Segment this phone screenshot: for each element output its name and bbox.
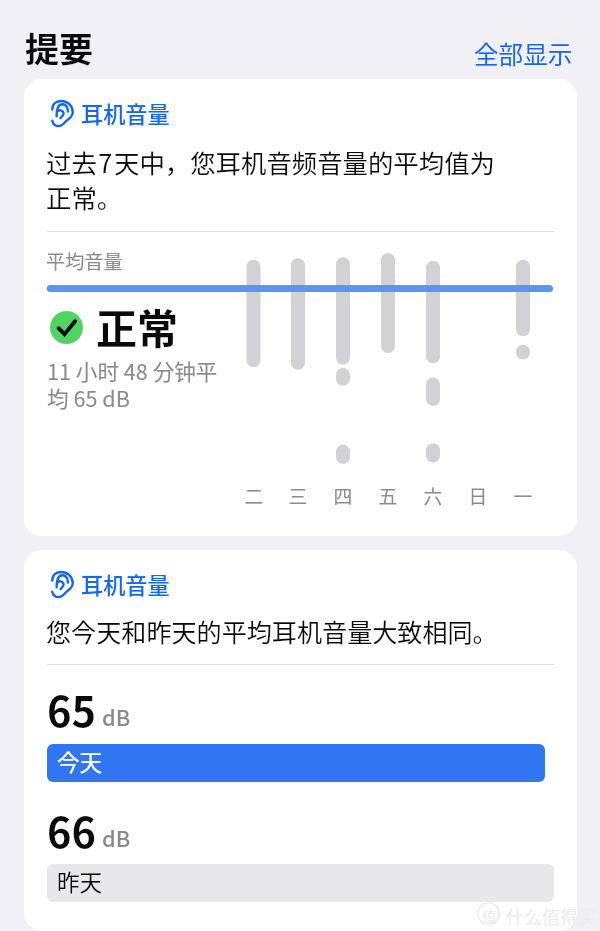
staticText: 四 — [328, 482, 358, 509]
button[interactable]: 耳机音量 — [49, 566, 172, 602]
staticText: dB — [102, 822, 131, 854]
button[interactable]: 今天 — [47, 744, 545, 782]
staticText: 11 小时 48 分钟平均 65 dB — [47, 355, 233, 413]
staticText: 耳机音量 — [81, 568, 170, 600]
staticText: 您今天和昨天的平均耳机音量大致相同。 — [46, 613, 498, 649]
staticText: 什么值得买 — [506, 903, 596, 929]
other: 状态正常 — [50, 311, 83, 344]
staticText: 值 — [482, 905, 498, 927]
staticText: 66 — [47, 800, 96, 860]
staticText: 五 — [373, 482, 403, 509]
staticText: 一 — [508, 482, 538, 509]
staticText: dB — [102, 701, 131, 733]
staticText: 65 — [47, 679, 96, 739]
button[interactable]: 昨天 — [47, 864, 554, 902]
staticText: 过去 7 天中，您耳机音频音量的平均值为 正常。 — [46, 144, 561, 216]
staticText: 三 — [283, 482, 313, 509]
staticText: 平均音量 — [46, 247, 123, 275]
button[interactable]: 耳机音量 — [49, 95, 172, 131]
staticText: 提要 — [25, 23, 93, 72]
button[interactable]: 耳机音量 — [24, 550, 577, 931]
staticText: 正常 — [96, 296, 178, 355]
staticText: 今天 — [57, 745, 103, 778]
staticText: 日 — [463, 482, 493, 509]
staticText: 昨天 — [57, 865, 103, 898]
staticText: 耳机音量 — [81, 97, 170, 129]
staticText: 二 — [239, 482, 269, 509]
button[interactable]: 耳机音量 — [24, 79, 577, 536]
staticText: 全部显示 — [474, 35, 573, 71]
staticText: 六 — [418, 482, 448, 509]
button[interactable]: 全部显示 — [470, 33, 577, 73]
